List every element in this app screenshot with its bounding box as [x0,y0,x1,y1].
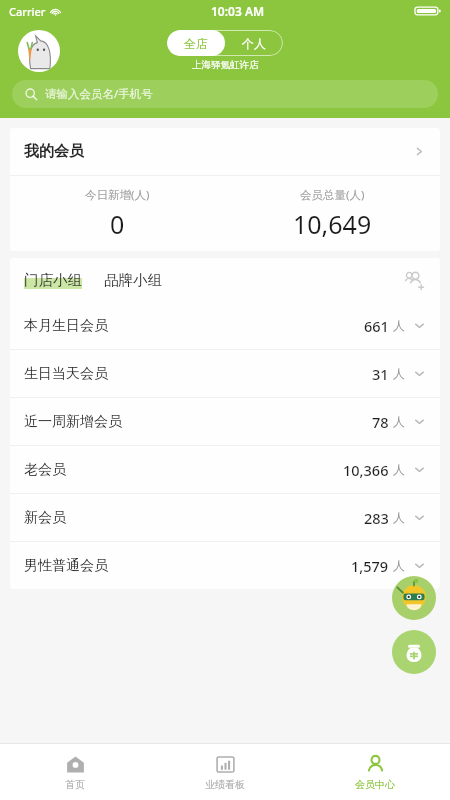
button[interactable]: 品牌小组 [104,271,162,289]
button[interactable]: 今日新增(人) [10,176,225,251]
button[interactable]: Profile avatar [18,30,60,72]
staticText: 业绩看板 [205,778,245,791]
button[interactable]: Add member group [402,268,426,292]
staticText: 全店 [184,36,208,51]
staticText: 品牌小组 [104,271,162,289]
button[interactable]: 近一周新增会员 [10,398,440,445]
staticText: 门店小组 [24,271,82,289]
button[interactable]: 请输入会员名/手机号 [12,80,438,108]
staticText: 人 [393,558,405,573]
staticText: 男性普通会员 [24,557,108,575]
staticText: 10,649 [293,207,372,241]
button[interactable]: 新会员 [10,494,440,541]
staticText: 本月生日会员 [24,317,108,335]
staticText: 老会员 [24,461,66,479]
button[interactable]: 业绩看板 [150,744,300,800]
staticText: 请输入会员名/手机号 [45,86,153,102]
button[interactable]: 我的会员 [10,128,440,175]
button[interactable]: 首页 [0,744,150,800]
staticText: 会员中心 [355,778,395,791]
staticText: 会员总量(人) [300,187,365,203]
button[interactable]: 男性普通会员 [10,542,440,589]
button[interactable]: 本月生日会员 [10,302,440,349]
staticText: 近一周新增会员 [24,413,122,431]
staticText: 生日当天会员 [24,365,108,383]
staticText: Carrier [9,4,46,19]
staticText: 人 [393,318,405,333]
staticText: 新会员 [24,509,66,527]
button[interactable]: 门店小组 [24,271,82,289]
staticText: 上海驿氪虹许店 [192,59,259,71]
staticText: 人 [393,366,405,381]
staticText: 首页 [65,778,85,791]
button[interactable]: 老会员 [10,446,440,493]
staticText: 0 [110,207,125,241]
staticText: 283 [364,508,389,528]
button[interactable]: 会员中心 [300,744,450,800]
staticText: 31 [372,364,389,384]
staticText: 人 [393,414,405,429]
staticText: 今日新增(人) [85,187,150,203]
staticText: 10:03 AM [211,3,265,19]
staticText: 10,366 [343,460,389,480]
button[interactable]: Revenue [392,630,436,674]
staticText: 我的会员 [24,142,84,161]
staticText: 个人 [242,36,266,51]
button[interactable]: 全店 [167,30,225,56]
staticText: 661 [364,316,389,336]
staticText: 人 [393,510,405,525]
button[interactable]: 生日当天会员 [10,350,440,397]
button[interactable]: 个人 [225,30,283,56]
staticText: 1,579 [351,556,389,576]
staticText: 78 [372,412,389,432]
button[interactable]: Assistant [392,576,436,620]
button[interactable]: 会员总量(人) [225,176,440,251]
staticText: 人 [393,462,405,477]
